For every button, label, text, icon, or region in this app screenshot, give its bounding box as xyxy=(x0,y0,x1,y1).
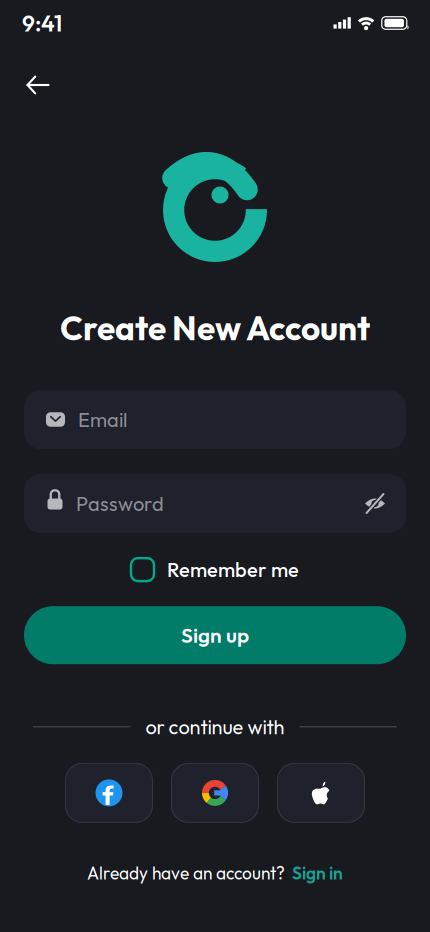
button[interactable]: Back xyxy=(14,47,62,123)
staticText: Create New Account xyxy=(60,307,370,349)
button[interactable]: Remember me xyxy=(131,548,299,591)
staticText: Password xyxy=(76,491,164,516)
button[interactable]: Continue with Apple xyxy=(277,763,364,822)
staticText: Remember me xyxy=(167,557,299,582)
staticText: Sign in xyxy=(292,862,343,884)
button[interactable]: Show password xyxy=(364,492,386,514)
staticText: Email xyxy=(78,407,127,432)
staticText: Already have an account? xyxy=(87,862,285,884)
button[interactable]: Continue with Facebook xyxy=(65,763,152,822)
button[interactable]: Sign in xyxy=(292,862,343,884)
staticText: Sign up xyxy=(181,622,249,648)
button[interactable]: Sign up xyxy=(0,606,430,664)
staticText: or continue with xyxy=(145,714,284,739)
button[interactable]: Continue with Google xyxy=(171,763,258,822)
staticText: 9:41 xyxy=(22,9,62,37)
